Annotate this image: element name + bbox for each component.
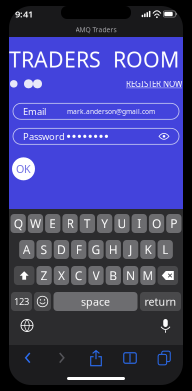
staticText: Email	[23, 105, 46, 117]
button[interactable]: H	[106, 240, 121, 259]
staticText: Q	[14, 215, 23, 231]
staticText: H	[109, 241, 118, 257]
button[interactable]: D	[54, 240, 69, 259]
button[interactable]: T	[80, 214, 95, 233]
button[interactable]: 123	[11, 292, 32, 311]
staticText: B	[109, 267, 117, 283]
button[interactable]: space	[53, 292, 137, 311]
staticText: K	[144, 241, 151, 257]
staticText: I	[137, 215, 141, 231]
button[interactable]: L	[158, 240, 173, 259]
staticText: X	[58, 267, 65, 283]
button[interactable]: B	[106, 266, 121, 285]
button[interactable]: Q	[10, 214, 26, 233]
button[interactable]: OK	[12, 157, 35, 180]
staticText: space	[81, 294, 110, 309]
button[interactable]: Shift	[14, 266, 34, 285]
button[interactable]: Dictate	[160, 318, 171, 333]
button[interactable]: C	[71, 266, 86, 285]
button[interactable]: X	[54, 266, 69, 285]
staticText: J	[129, 241, 132, 257]
button[interactable]: Emoji	[34, 292, 51, 311]
button[interactable]: R	[62, 214, 78, 233]
button[interactable]: W	[28, 214, 43, 233]
button[interactable]: P	[166, 214, 181, 233]
button[interactable]: Next keyboard	[21, 319, 33, 331]
button[interactable]: K	[140, 240, 155, 259]
staticText: W	[30, 215, 41, 231]
button[interactable]: U	[114, 214, 130, 233]
staticText: U	[117, 215, 126, 231]
staticText: R	[67, 215, 74, 231]
staticText: REGISTER NOW	[126, 78, 182, 89]
staticText: OK	[16, 162, 31, 176]
staticText: S	[41, 241, 48, 257]
button[interactable]: O	[149, 214, 164, 233]
staticText: L	[162, 241, 168, 257]
button[interactable]: J	[123, 240, 138, 259]
button[interactable]: return	[140, 292, 181, 311]
staticText: 9:41	[15, 8, 33, 20]
staticText: P	[170, 215, 177, 231]
staticText: C	[75, 267, 83, 283]
staticText: D	[57, 241, 66, 257]
staticText: N	[126, 267, 135, 283]
button[interactable]: REGISTER NOW	[126, 78, 182, 89]
staticText: AMQ Traders	[75, 25, 116, 34]
staticText: Password	[23, 130, 65, 142]
button[interactable]: S	[36, 240, 52, 259]
button[interactable]: Y	[97, 214, 112, 233]
staticText: G	[91, 241, 100, 257]
staticText: Y	[101, 215, 108, 231]
staticText: TRADERS ROOM	[9, 45, 179, 73]
staticText: mark.anderson@gmail.com	[67, 107, 155, 116]
button[interactable]: Share	[84, 349, 108, 367]
button[interactable]: V	[88, 266, 104, 285]
staticText: F	[76, 241, 82, 257]
button[interactable]: F	[71, 240, 86, 259]
staticText: E	[49, 215, 56, 231]
button[interactable]: Delete	[158, 266, 178, 285]
button[interactable]: Tabs	[152, 349, 176, 367]
staticText: Z	[41, 267, 48, 283]
button[interactable]: E	[45, 214, 60, 233]
button[interactable]: N	[123, 266, 138, 285]
button[interactable]: I	[132, 214, 147, 233]
button[interactable]: Forward	[50, 349, 74, 367]
staticText: 123	[14, 295, 29, 308]
staticText: T	[84, 215, 91, 231]
button[interactable]: Back	[16, 349, 40, 367]
button[interactable]: Bookmarks	[118, 349, 142, 367]
staticText: V	[92, 267, 99, 283]
staticText: return	[144, 294, 176, 309]
button[interactable]: A	[19, 240, 34, 259]
button[interactable]: Z	[36, 266, 52, 285]
button[interactable]: M	[140, 266, 155, 285]
staticText: A	[23, 241, 31, 257]
button[interactable]: G	[88, 240, 104, 259]
staticText: O	[152, 215, 161, 231]
staticText: M	[142, 267, 153, 283]
